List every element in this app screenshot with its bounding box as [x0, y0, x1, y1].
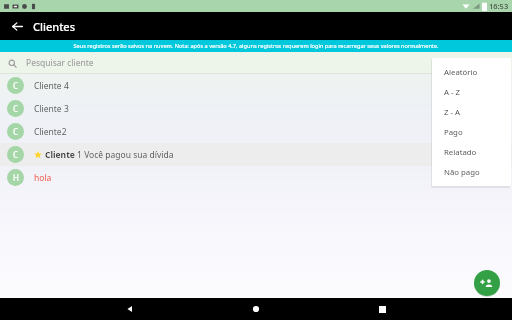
- staticText: Cliente 3: [34, 103, 69, 115]
- button[interactable]: Toggle view layout: [489, 54, 507, 72]
- button[interactable]: A - Z: [432, 82, 511, 102]
- button[interactable]: C: [0, 97, 512, 120]
- staticText: Seus registros serão salvos na nuvem. No…: [73, 42, 439, 50]
- staticText: Pago: [444, 127, 463, 138]
- staticText: Relatado: [444, 147, 477, 158]
- button[interactable]: H: [0, 166, 512, 189]
- button[interactable]: Back: [6, 15, 28, 37]
- button[interactable]: Aleatório: [432, 62, 511, 82]
- staticText: H: [13, 172, 19, 183]
- staticText: Aleatório: [444, 67, 478, 78]
- button[interactable]: Relatado: [432, 142, 511, 162]
- staticText: 16:53: [489, 1, 509, 11]
- staticText: Cliente2: [34, 126, 67, 138]
- button[interactable]: Recent apps: [372, 299, 392, 319]
- staticText: A - Z: [444, 87, 461, 98]
- button[interactable]: Não pago: [432, 162, 511, 182]
- button[interactable]: Pago: [432, 122, 511, 142]
- staticText: Cliente 4: [34, 80, 69, 92]
- staticText: Z - A: [444, 107, 461, 118]
- button[interactable]: Add client: [474, 270, 500, 296]
- staticText: hola: [34, 172, 52, 184]
- staticText: Não pago: [444, 167, 480, 178]
- button[interactable]: C: [0, 74, 512, 97]
- button[interactable]: C: [0, 143, 512, 166]
- button[interactable]: Home: [246, 299, 266, 319]
- staticText: Pesquisar cliente: [26, 57, 94, 69]
- staticText: C: [13, 80, 19, 91]
- staticText: C: [13, 103, 19, 114]
- button[interactable]: Back: [120, 299, 140, 319]
- staticText: C: [13, 149, 19, 160]
- button[interactable]: Z - A: [432, 102, 511, 122]
- button[interactable]: C: [0, 120, 512, 143]
- staticText: Clientes: [33, 19, 76, 34]
- staticText: Cliente 1 Você pagou sua dívida: [45, 149, 174, 161]
- staticText: C: [13, 126, 19, 137]
